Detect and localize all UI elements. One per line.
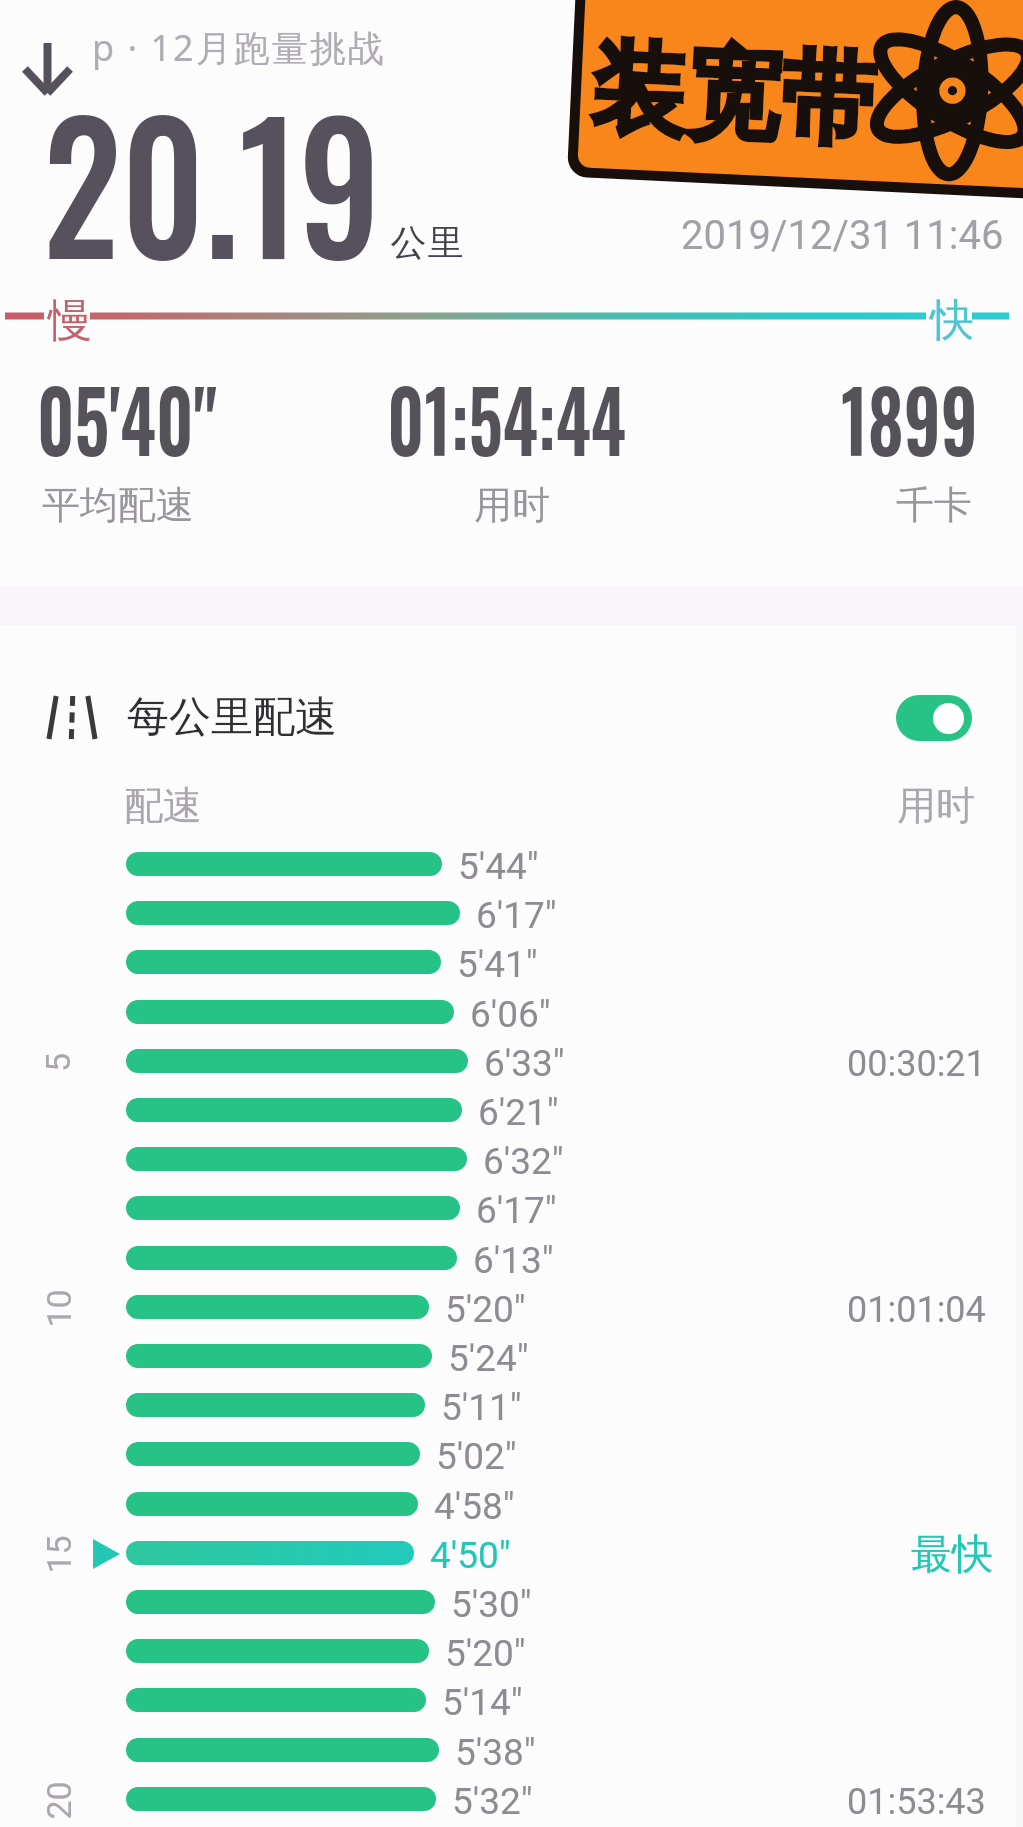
- staticText: 5'20": [445, 1288, 526, 1331]
- button[interactable]: 5'41": [0, 938, 1023, 987]
- staticText: 用时: [474, 481, 550, 529]
- staticText: 平均配速: [42, 481, 194, 529]
- staticText: 5'02": [436, 1435, 517, 1478]
- staticText: 1899: [841, 355, 978, 481]
- staticText: 5'14": [442, 1681, 523, 1724]
- staticText: 01:54:44: [387, 355, 627, 481]
- staticText: 4'50": [430, 1534, 511, 1577]
- staticText: 公里: [390, 220, 464, 265]
- staticText: 05'40": [37, 355, 217, 481]
- button[interactable]: 6'13": [0, 1234, 1023, 1283]
- staticText: 01:53:43: [847, 1781, 986, 1823]
- staticText: 6'06": [470, 993, 551, 1036]
- staticText: 20.19: [43, 50, 381, 309]
- button[interactable]: 6'06": [0, 988, 1023, 1037]
- button[interactable]: 6'21": [0, 1086, 1023, 1135]
- button[interactable]: 5'24": [0, 1332, 1023, 1381]
- button[interactable]: 5'11": [0, 1381, 1023, 1430]
- staticText: 6'13": [473, 1239, 554, 1282]
- staticText: 5: [38, 1052, 78, 1072]
- staticText: 4'58": [434, 1485, 515, 1528]
- staticText: 最快: [911, 1529, 993, 1578]
- staticText: 6'32": [483, 1140, 564, 1183]
- button[interactable]: 20: [0, 1775, 1023, 1824]
- staticText: 15: [38, 1534, 78, 1573]
- staticText: 20: [38, 1780, 78, 1819]
- staticText: 6'21": [478, 1091, 559, 1134]
- staticText: 5'24": [448, 1337, 529, 1380]
- staticText: 5'20": [445, 1632, 526, 1675]
- button[interactable]: Advertisement: [567, 0, 1023, 200]
- staticText: 千卡: [896, 481, 972, 529]
- staticText: p · 12月跑量挑战: [92, 23, 386, 72]
- button[interactable]: 5'14": [0, 1676, 1023, 1725]
- button[interactable]: 5'38": [0, 1726, 1023, 1775]
- staticText: 6'33": [484, 1042, 565, 1085]
- button[interactable]: 4'58": [0, 1480, 1023, 1529]
- staticText: 5'44": [458, 845, 539, 888]
- staticText: 5'38": [455, 1731, 536, 1774]
- staticText: 6'17": [476, 1189, 557, 1232]
- button[interactable]: 6'32": [0, 1135, 1023, 1184]
- button[interactable]: 5: [0, 1037, 1023, 1086]
- staticText: 5'11": [441, 1386, 522, 1429]
- button[interactable]: Toggle per-kilometre pace: [896, 695, 972, 741]
- button[interactable]: 6'17": [0, 889, 1023, 938]
- staticText: 慢: [48, 293, 92, 348]
- button[interactable]: 10: [0, 1283, 1023, 1332]
- staticText: 配速: [124, 781, 202, 830]
- button[interactable]: 5'02": [0, 1430, 1023, 1479]
- staticText: 5'32": [452, 1780, 533, 1823]
- button[interactable]: 15: [0, 1529, 1023, 1578]
- staticText: 5'30": [451, 1583, 532, 1626]
- staticText: 10: [38, 1288, 78, 1327]
- staticText: 5'41": [457, 943, 538, 986]
- button[interactable]: Download: [10, 30, 85, 105]
- staticText: 用时: [897, 781, 975, 830]
- button[interactable]: 5'20": [0, 1627, 1023, 1676]
- staticText: 01:01:04: [847, 1289, 986, 1331]
- button[interactable]: 6'17": [0, 1184, 1023, 1233]
- staticText: 00:30:21: [847, 1043, 986, 1085]
- staticText: 每公里配速: [127, 691, 337, 744]
- staticText: 2019/12/31 11:46: [681, 212, 1004, 259]
- staticText: 装宽带: [588, 27, 879, 166]
- button[interactable]: 5'44": [0, 840, 1023, 889]
- staticText: 6'17": [476, 894, 557, 937]
- staticText: 快: [930, 293, 974, 348]
- button[interactable]: 5'30": [0, 1578, 1023, 1627]
